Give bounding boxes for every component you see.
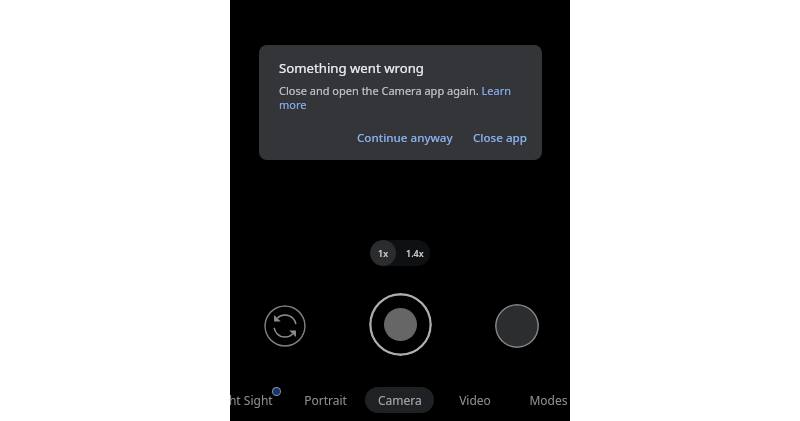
button[interactable]: Modes [508, 387, 570, 413]
staticText: Close app [473, 130, 527, 146]
button[interactable]: Continue anyway [351, 126, 459, 150]
button[interactable]: Gallery [495, 304, 539, 348]
button[interactable]: Portrait [285, 387, 365, 413]
staticText: Close and open the Camera app again. Lea… [279, 83, 523, 112]
staticText: Video [459, 392, 491, 408]
button[interactable]: Night Sight [230, 387, 281, 413]
staticText: Portrait [304, 392, 347, 408]
staticText: 1.4x [406, 247, 424, 259]
button[interactable]: Take photo [369, 293, 432, 356]
button[interactable]: Close app [467, 126, 533, 150]
staticText: Night Sight [230, 392, 273, 408]
button[interactable]: 1x [370, 240, 396, 266]
button[interactable]: Camera [365, 387, 434, 413]
button[interactable]: Switch camera [264, 305, 306, 347]
staticText: 1x [378, 247, 389, 259]
button[interactable]: Video [435, 387, 515, 413]
staticText: Continue anyway [357, 130, 453, 146]
staticText: Modes [529, 392, 568, 408]
staticText: Camera [378, 392, 422, 408]
staticText: Something went wrong [279, 59, 424, 77]
button[interactable]: 1.4x [399, 240, 430, 266]
